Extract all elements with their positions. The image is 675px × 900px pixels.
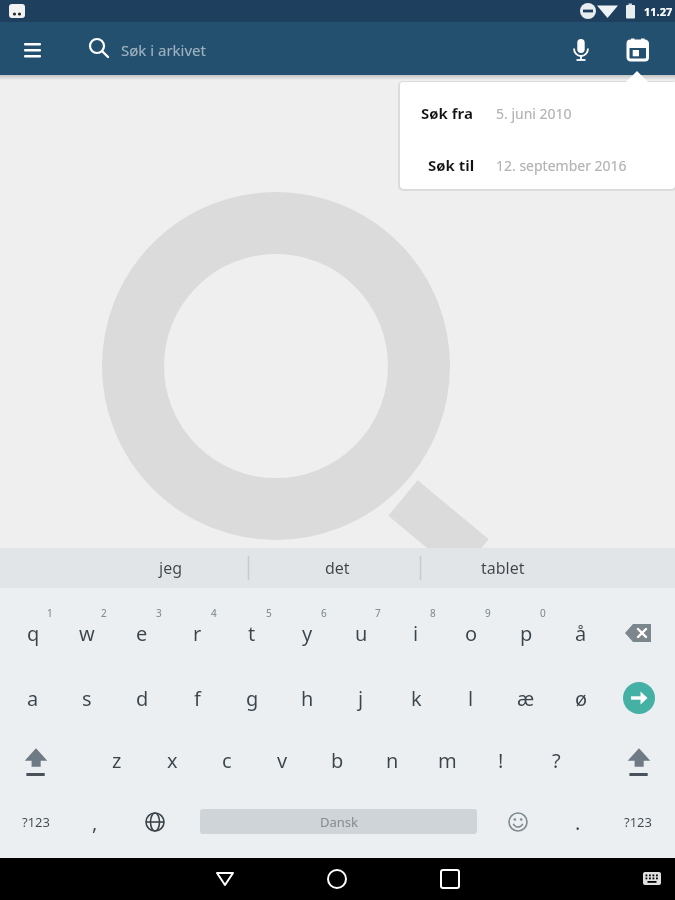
button[interactable]: ? xyxy=(531,738,581,782)
staticText: s xyxy=(82,685,92,712)
staticText: t xyxy=(248,620,256,647)
button[interactable]: Søk i arkivet xyxy=(80,25,540,73)
staticText: ? xyxy=(552,747,561,774)
button[interactable]: 8 xyxy=(425,606,441,620)
staticText: 7 xyxy=(375,606,381,620)
staticText: u xyxy=(355,620,368,647)
staticText: z xyxy=(112,747,122,774)
staticText: 1 xyxy=(47,606,53,620)
button[interactable]: ! xyxy=(476,738,526,782)
button[interactable]: Dansk xyxy=(200,809,477,834)
button[interactable]: 7 xyxy=(370,606,386,620)
staticText: a xyxy=(27,685,39,712)
button[interactable]: tablet xyxy=(428,548,578,588)
button[interactable] xyxy=(14,738,58,782)
staticText: k xyxy=(411,685,422,712)
staticText: h xyxy=(301,685,314,712)
button[interactable]: q xyxy=(8,611,58,655)
button[interactable]: o xyxy=(446,611,496,655)
button[interactable] xyxy=(615,611,661,655)
button[interactable]: m xyxy=(422,738,472,782)
button[interactable]: 1 xyxy=(42,606,58,620)
staticText: p xyxy=(520,620,533,647)
staticText: y xyxy=(302,620,313,647)
button[interactable]: 3 xyxy=(151,606,167,620)
staticText: j xyxy=(358,685,364,712)
button[interactable] xyxy=(614,26,659,71)
button[interactable] xyxy=(496,800,540,844)
staticText: ø xyxy=(575,685,588,712)
staticText: ?123 xyxy=(624,813,652,831)
button[interactable]: x xyxy=(147,738,197,782)
button[interactable]: 0 xyxy=(535,606,551,620)
staticText: d xyxy=(136,685,149,712)
staticText: x xyxy=(167,747,178,774)
button[interactable]: b xyxy=(312,738,362,782)
button[interactable]: s xyxy=(62,676,112,720)
button[interactable] xyxy=(133,800,177,844)
button[interactable]: 9 xyxy=(480,606,496,620)
button[interactable]: Søk til xyxy=(400,135,675,189)
staticText: 12. september 2016 xyxy=(496,156,627,175)
button[interactable]: r xyxy=(172,611,222,655)
staticText: 9 xyxy=(485,606,491,620)
button[interactable]: jeg xyxy=(95,548,245,588)
button[interactable]: y xyxy=(282,611,332,655)
staticText: tablet xyxy=(481,557,525,579)
staticText: g xyxy=(246,685,259,712)
button[interactable] xyxy=(617,738,661,782)
button[interactable]: h xyxy=(282,676,332,720)
staticText: 2 xyxy=(101,606,107,620)
button[interactable]: g xyxy=(227,676,277,720)
staticText: c xyxy=(222,747,232,774)
button[interactable] xyxy=(428,858,472,900)
button[interactable]: k xyxy=(391,676,441,720)
button[interactable]: å xyxy=(556,611,606,655)
button[interactable]: c xyxy=(202,738,252,782)
button[interactable] xyxy=(558,26,603,71)
button[interactable]: i xyxy=(391,611,441,655)
button[interactable]: v xyxy=(257,738,307,782)
button[interactable]: u xyxy=(336,611,386,655)
staticText: r xyxy=(193,620,202,647)
button[interactable] xyxy=(203,858,247,900)
staticText: æ xyxy=(517,685,535,712)
button[interactable] xyxy=(618,676,660,718)
button[interactable]: ø xyxy=(556,676,606,720)
button[interactable] xyxy=(315,858,359,900)
staticText: Søk til xyxy=(428,155,475,175)
button[interactable]: . xyxy=(553,800,603,844)
button[interactable]: d xyxy=(117,676,167,720)
button[interactable]: j xyxy=(336,676,386,720)
staticText: q xyxy=(27,620,40,647)
button[interactable]: a xyxy=(8,676,58,720)
button[interactable]: ?123 xyxy=(613,800,663,844)
button[interactable] xyxy=(633,858,671,900)
button[interactable]: w xyxy=(62,611,112,655)
button[interactable]: , xyxy=(70,800,120,844)
button[interactable]: e xyxy=(117,611,167,655)
button[interactable]: z xyxy=(92,738,142,782)
button[interactable]: 6 xyxy=(316,606,332,620)
staticText: i xyxy=(413,620,419,647)
button[interactable]: t xyxy=(227,611,277,655)
button[interactable]: æ xyxy=(501,676,551,720)
button[interactable]: det xyxy=(262,548,412,588)
button[interactable]: p xyxy=(501,611,551,655)
button[interactable]: 2 xyxy=(96,606,112,620)
button[interactable]: l xyxy=(446,676,496,720)
button[interactable] xyxy=(10,26,55,71)
staticText: 5 xyxy=(266,606,272,620)
staticText: det xyxy=(325,557,350,579)
button[interactable]: 4 xyxy=(206,606,222,620)
staticText: 4 xyxy=(211,606,217,620)
staticText: , xyxy=(92,809,98,836)
staticText: w xyxy=(79,620,95,647)
button[interactable]: Søk fra xyxy=(400,82,675,135)
button[interactable]: 5 xyxy=(261,606,277,620)
button[interactable]: f xyxy=(172,676,222,720)
button[interactable]: n xyxy=(367,738,417,782)
button[interactable]: ?123 xyxy=(11,800,61,844)
staticText: n xyxy=(386,747,399,774)
staticText: ?123 xyxy=(22,813,50,831)
